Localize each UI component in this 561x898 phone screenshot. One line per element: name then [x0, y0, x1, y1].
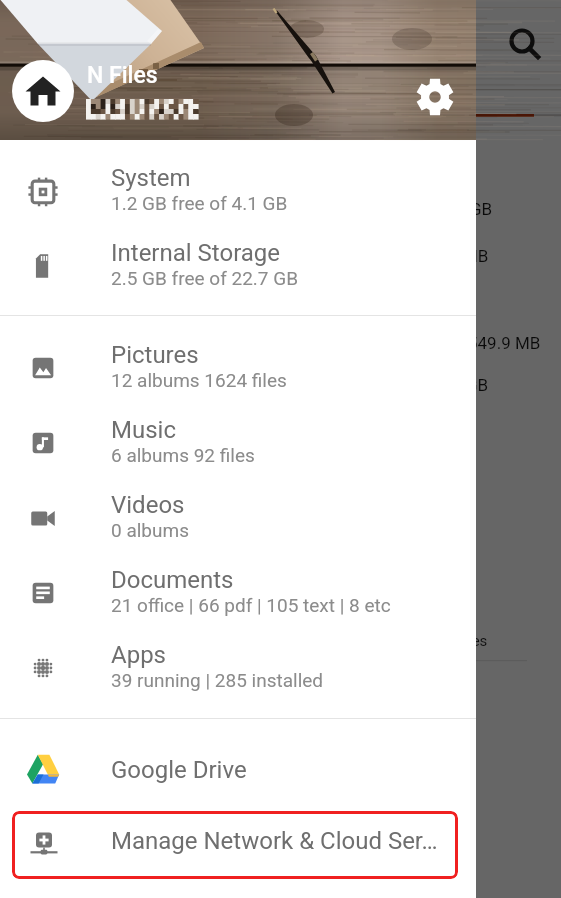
staticText: Manage Network & Cloud Ser…	[111, 827, 438, 855]
staticText: Internal Storage	[111, 239, 281, 267]
button[interactable]: Music	[0, 416, 476, 491]
staticText: 12 albums 1624 files	[111, 369, 287, 391]
staticText: N Files	[87, 62, 158, 89]
button[interactable]: Apps	[0, 641, 476, 716]
staticText: GB	[470, 199, 493, 219]
staticText: Videos	[111, 491, 185, 519]
button[interactable]: Pictures	[0, 341, 476, 416]
button[interactable]: Home	[12, 60, 74, 122]
button[interactable]: Google Drive	[0, 746, 476, 821]
staticText: 0 albums	[111, 519, 189, 541]
button[interactable]: System	[0, 164, 476, 239]
staticText: 6 albums 92 files	[111, 444, 255, 466]
staticText: 39 running | 285 installed	[111, 669, 324, 691]
staticText: les	[468, 632, 488, 650]
staticText: Documents	[111, 566, 234, 594]
staticText: Music	[111, 416, 176, 444]
button[interactable]: Internal Storage	[0, 239, 476, 314]
staticText: 21 office | 66 pdf | 105 text | 8 etc	[111, 594, 391, 616]
button[interactable]: Videos	[0, 491, 476, 566]
staticText: 549.9 MB	[468, 333, 541, 353]
button[interactable]: Documents	[0, 566, 476, 641]
button[interactable]: Manage Network & Cloud Ser…	[12, 811, 458, 879]
staticText: 1.2 GB free of 4.1 GB	[111, 192, 288, 214]
staticText: Google Drive	[111, 756, 247, 784]
staticText: Pictures	[111, 341, 199, 369]
staticText: System	[111, 164, 191, 192]
staticText: MB	[463, 246, 489, 266]
staticText: Apps	[111, 641, 166, 669]
staticText: GB	[466, 375, 489, 395]
button[interactable]: Settings	[416, 78, 454, 116]
staticText: 2.5 GB free of 22.7 GB	[111, 267, 298, 289]
